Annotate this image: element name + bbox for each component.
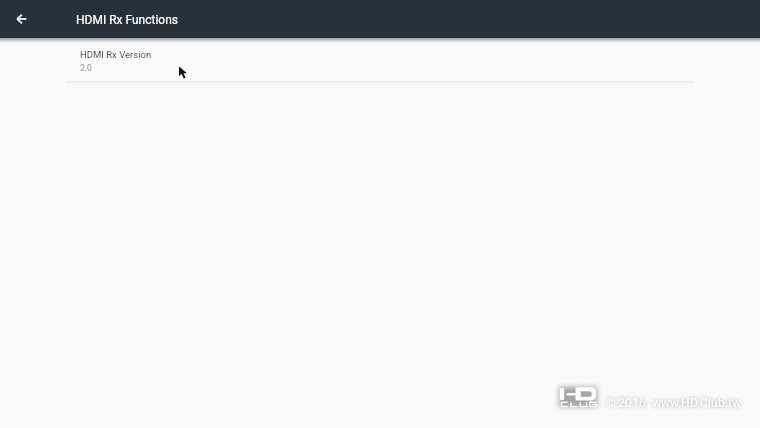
button[interactable]: HDMI Rx Version (0, 43, 760, 79)
staticText: HDMI Rx Functions (76, 13, 179, 27)
button[interactable]: Navigate up (4, 0, 40, 38)
staticText: 2.0 (80, 63, 92, 73)
staticText: HDMI Rx Version (80, 49, 152, 60)
